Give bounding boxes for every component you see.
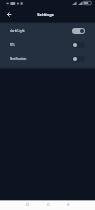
button[interactable]: Back bbox=[3, 8, 15, 20]
button[interactable]: Recents bbox=[22, 199, 32, 209]
staticText: Notification bbox=[10, 57, 27, 61]
staticText: Settings bbox=[37, 12, 54, 17]
staticText: RTL bbox=[10, 43, 16, 47]
button[interactable]: Home bbox=[43, 199, 53, 209]
button[interactable]: Toggle off bbox=[72, 56, 85, 62]
button[interactable]: Toggle off bbox=[72, 42, 85, 48]
button[interactable]: Notification bbox=[0, 52, 95, 66]
button[interactable]: Back bbox=[63, 199, 73, 209]
button[interactable]: dark/Light bbox=[0, 24, 95, 38]
button[interactable]: Toggle on bbox=[72, 28, 85, 34]
staticText: dark/Light bbox=[10, 29, 25, 33]
button[interactable]: RTL bbox=[0, 38, 95, 52]
